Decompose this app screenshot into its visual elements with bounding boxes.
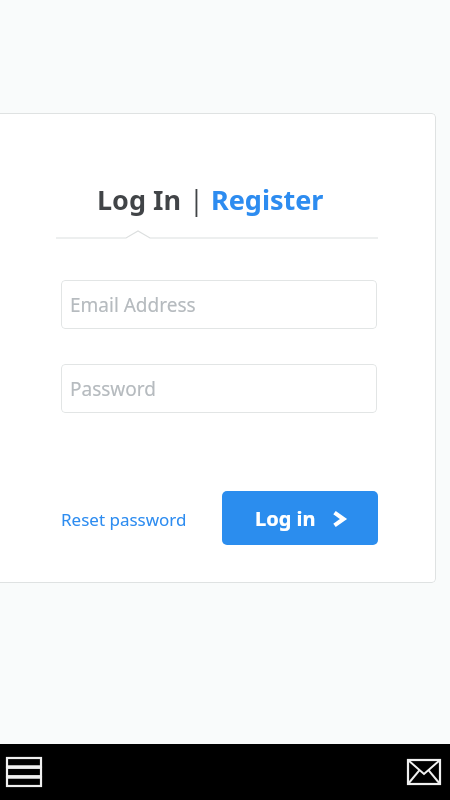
button[interactable]: Register	[211, 181, 324, 218]
button[interactable]: Email Address	[61, 280, 377, 329]
staticText: Password	[70, 376, 156, 402]
button[interactable]: Log in	[222, 491, 378, 545]
button[interactable]: Log In	[97, 181, 182, 218]
button[interactable]: Messages	[402, 750, 446, 794]
staticText: |	[182, 181, 211, 218]
staticText: Reset password	[61, 508, 187, 531]
staticText: Email Address	[70, 292, 196, 318]
button[interactable]: Reset password	[61, 505, 187, 533]
staticText: Log in	[255, 505, 316, 532]
button[interactable]: Password	[61, 364, 377, 413]
button[interactable]: Menu	[2, 750, 46, 794]
